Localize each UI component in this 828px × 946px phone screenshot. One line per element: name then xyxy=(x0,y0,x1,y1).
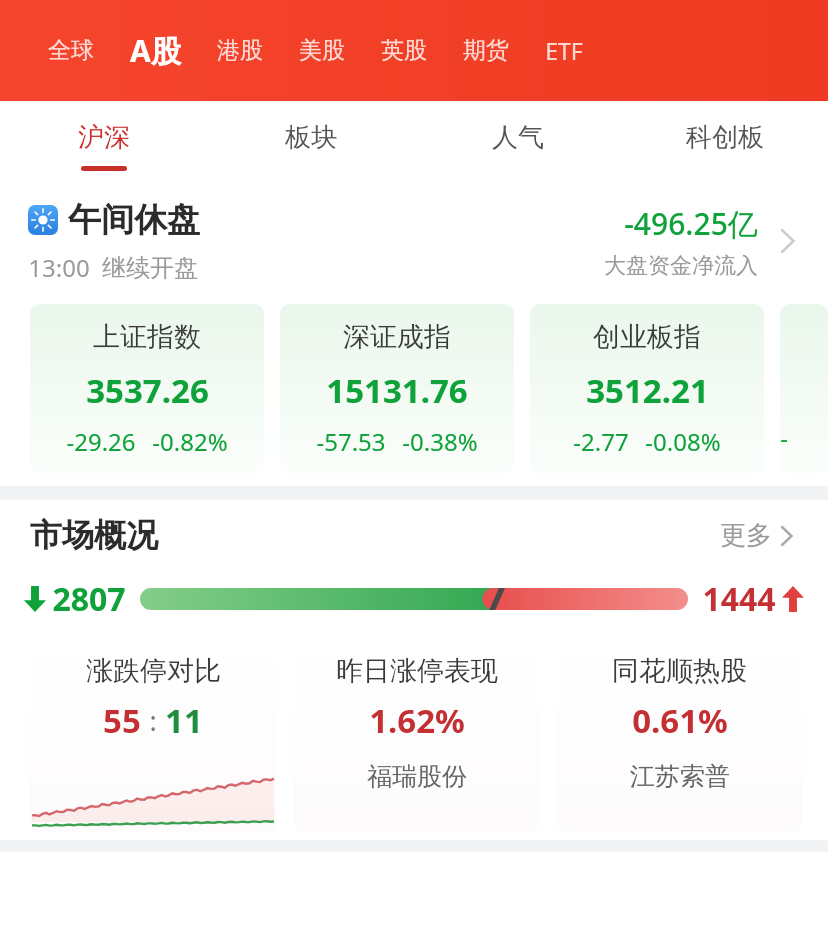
staticText: 继续开盘 xyxy=(102,253,198,283)
button[interactable]: 涨跌停对比 xyxy=(30,634,276,832)
staticText: -29.26 xyxy=(66,425,136,458)
button[interactable]: 上证指数 xyxy=(30,304,264,474)
staticText: : xyxy=(149,702,157,739)
staticText: 期货 xyxy=(463,36,509,65)
staticText: 1.62% xyxy=(369,698,465,743)
button[interactable]: 创业板指 xyxy=(530,304,764,474)
staticText: -0.82% xyxy=(152,425,228,458)
staticText: -57.53 xyxy=(316,425,386,458)
staticText: 沪深 xyxy=(78,121,130,154)
button[interactable]: 英股 xyxy=(363,26,445,75)
button[interactable]: 全球 xyxy=(30,26,112,75)
staticText: 大盘资金净流入 xyxy=(604,252,758,280)
staticText: - xyxy=(780,421,788,454)
button[interactable]: 2807 xyxy=(24,570,804,628)
staticText: 0.61% xyxy=(632,698,728,743)
staticText: 上证指数 xyxy=(93,320,201,354)
staticText: -2.77 xyxy=(573,425,629,458)
staticText: 江苏索普 xyxy=(630,761,730,792)
staticText: 15131.76 xyxy=(326,368,468,413)
staticText: 人气 xyxy=(492,121,544,154)
staticText: 创业板指 xyxy=(593,320,701,354)
button[interactable]: 人气 xyxy=(414,101,621,186)
staticText: 午间休盘 xyxy=(68,199,200,241)
staticText: 英股 xyxy=(381,36,427,65)
button[interactable]: 同花顺热股 xyxy=(557,634,802,832)
other: 查看资金流向 xyxy=(768,221,808,261)
staticText: -0.38% xyxy=(402,425,478,458)
staticText: 同花顺热股 xyxy=(612,654,747,688)
staticText: 市场概况 xyxy=(30,515,158,555)
staticText: 3512.21 xyxy=(586,368,709,413)
button[interactable]: ETF xyxy=(527,25,601,76)
staticText: 深证成指 xyxy=(343,320,451,354)
staticText: 福瑞股份 xyxy=(367,761,467,792)
button[interactable]: 期货 xyxy=(445,26,527,75)
staticText: -496.25亿 xyxy=(624,203,758,244)
staticText: 全球 xyxy=(48,36,94,65)
staticText: 板块 xyxy=(285,121,337,154)
button[interactable]: 板块 xyxy=(207,101,414,186)
button[interactable]: 午间休盘 xyxy=(0,186,828,296)
staticText: 更多 xyxy=(720,519,772,552)
staticText: 美股 xyxy=(299,36,345,65)
staticText: 昨日涨停表现 xyxy=(336,654,498,688)
button[interactable]: 港股 xyxy=(199,26,281,75)
button[interactable]: 科创板 xyxy=(621,101,828,186)
staticText: 55 xyxy=(103,698,141,743)
staticText: 科创板 xyxy=(686,121,764,154)
staticText: 2807 xyxy=(52,577,126,621)
staticText: 1444 xyxy=(702,577,776,621)
staticText: -0.08% xyxy=(645,425,721,458)
button[interactable]: - xyxy=(780,304,828,474)
staticText: 13:00 xyxy=(28,251,90,284)
staticText: 3537.26 xyxy=(86,368,209,413)
staticText: 11 xyxy=(165,698,203,743)
staticText: 港股 xyxy=(217,36,263,65)
staticText: 涨跌停对比 xyxy=(86,654,221,688)
button[interactable]: 深证成指 xyxy=(280,304,514,474)
staticText: A股 xyxy=(130,30,181,71)
staticText: ETF xyxy=(545,35,583,66)
button[interactable]: 昨日涨停表现 xyxy=(294,634,539,832)
button[interactable]: A股 xyxy=(112,20,199,81)
button[interactable]: 更多 xyxy=(720,519,802,552)
button[interactable]: 沪深 xyxy=(0,101,207,186)
button[interactable]: 美股 xyxy=(281,26,363,75)
